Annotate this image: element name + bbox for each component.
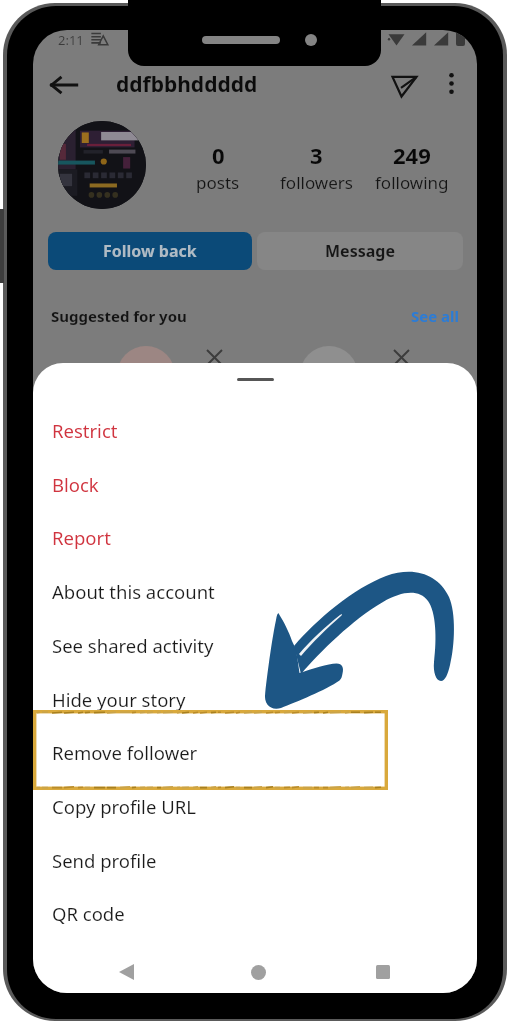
button[interactable]: See all: [407, 302, 464, 330]
staticText: Hide your story: [52, 687, 186, 712]
button[interactable]: Follow back: [48, 232, 252, 270]
staticText: ddfbbhddddd: [116, 70, 258, 99]
staticText: Copy profile URL: [52, 794, 196, 819]
staticText: Send profile: [52, 848, 157, 873]
button[interactable]: More options: [429, 61, 473, 105]
button[interactable]: Recents: [360, 950, 406, 993]
button[interactable]: Hide your story: [33, 673, 477, 726]
staticText: About this account: [52, 579, 215, 604]
staticText: followers: [280, 171, 353, 194]
button[interactable]: See shared activity: [33, 619, 477, 672]
staticText: Block: [52, 472, 99, 497]
button[interactable]: Remove follower: [33, 726, 477, 779]
button[interactable]: Back: [41, 62, 87, 108]
button[interactable]: QR code: [33, 887, 477, 940]
button[interactable]: Back: [103, 950, 149, 993]
staticText: 3: [310, 140, 323, 170]
button[interactable]: Send profile: [33, 834, 477, 887]
button[interactable]: About this account: [33, 565, 477, 618]
staticText: See shared activity: [52, 633, 214, 658]
staticText: 249: [393, 140, 431, 170]
button[interactable]: Share: [380, 61, 428, 109]
button[interactable]: Block: [33, 458, 477, 511]
button[interactable]: Profile picture: [58, 121, 146, 209]
staticText: Suggested for you: [51, 306, 187, 326]
staticText: 0: [212, 140, 225, 170]
staticText: posts: [196, 171, 240, 194]
staticText: Follow back: [103, 240, 197, 262]
button[interactable]: Restrict: [33, 404, 477, 457]
staticText: Restrict: [52, 418, 118, 443]
staticText: 2:11: [58, 31, 84, 49]
button[interactable]: Home: [235, 950, 281, 993]
staticText: See all: [411, 306, 460, 326]
button[interactable]: Report: [33, 511, 477, 564]
staticText: Message: [325, 240, 395, 262]
staticText: Remove follower: [52, 740, 198, 765]
button[interactable]: Message: [257, 232, 463, 270]
staticText: following: [375, 171, 449, 194]
button[interactable]: Copy profile URL: [33, 780, 477, 833]
staticText: Report: [52, 525, 111, 550]
staticText: QR code: [52, 901, 125, 926]
